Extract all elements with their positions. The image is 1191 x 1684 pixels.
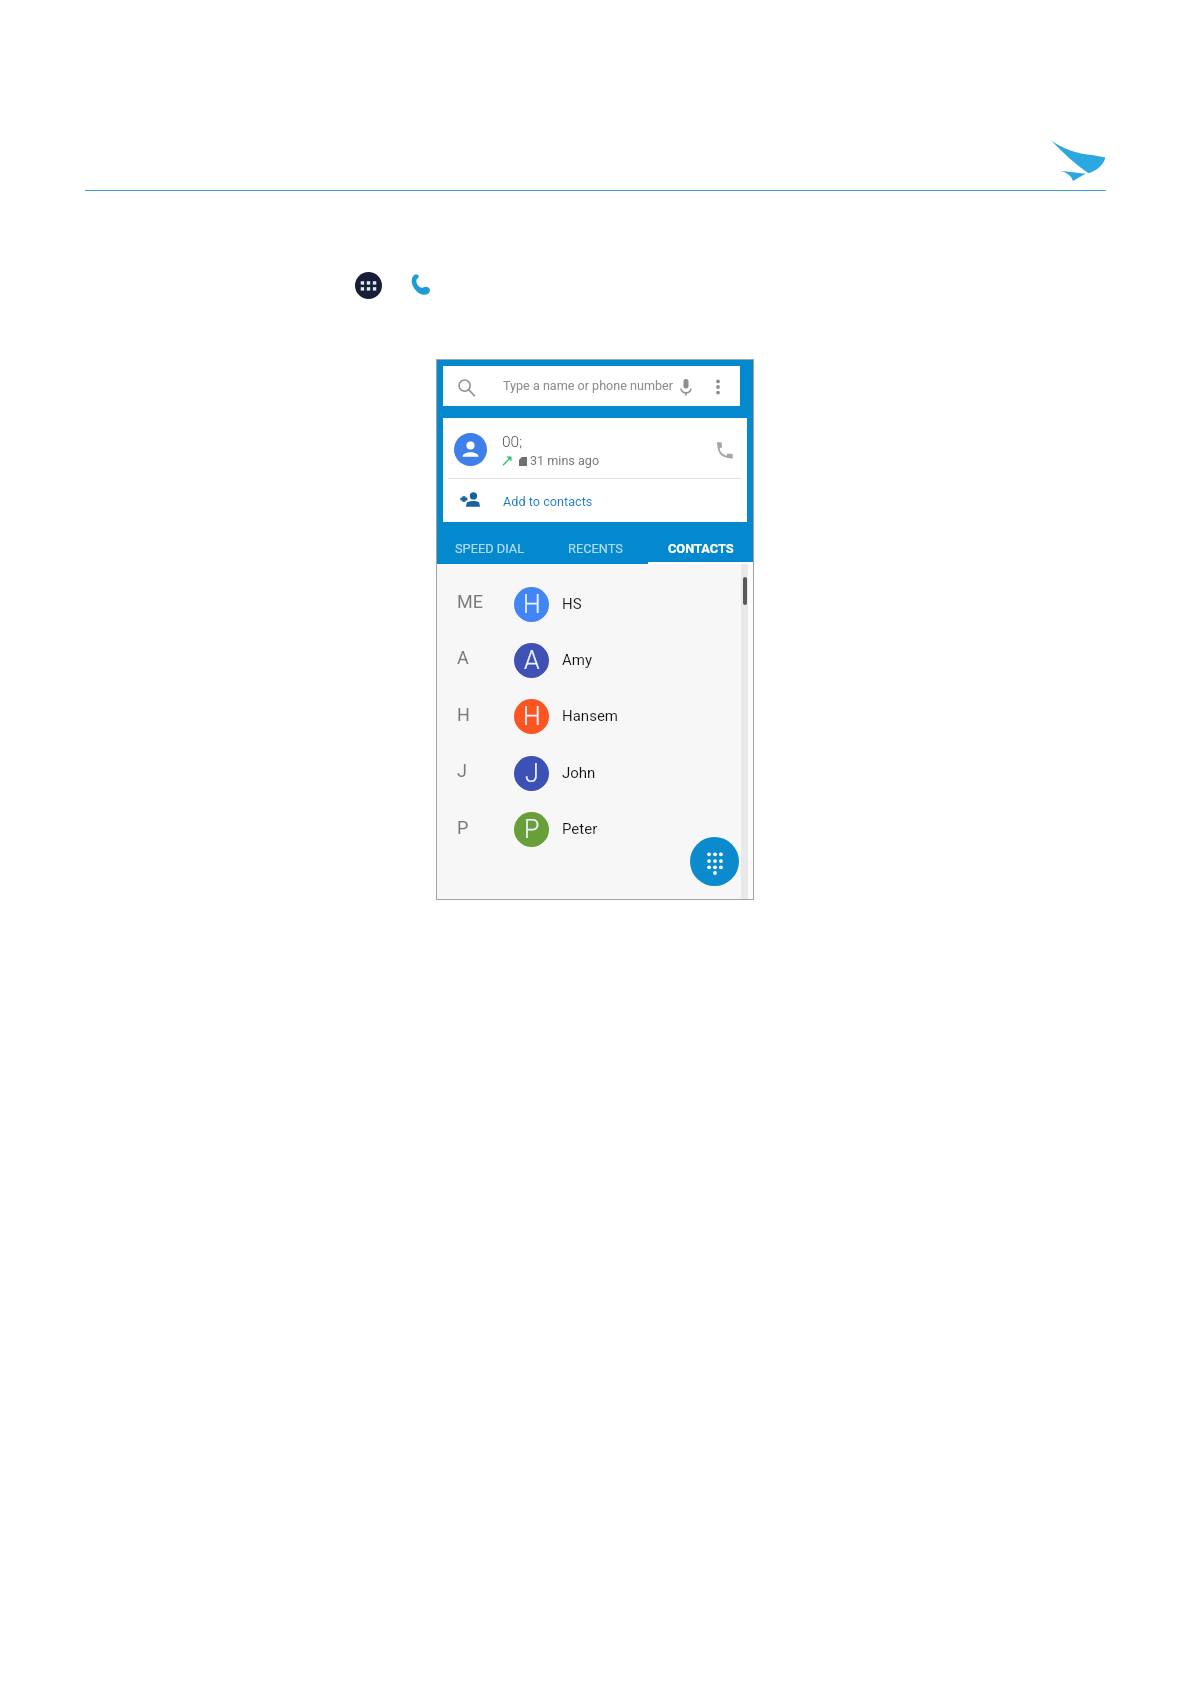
staticText: 31 mins ago: [530, 453, 600, 468]
staticText: H: [523, 702, 541, 731]
button[interactable]: P: [457, 817, 469, 838]
staticText: Peter: [562, 820, 598, 838]
button[interactable]: J: [507, 745, 747, 801]
staticText: P: [524, 815, 540, 844]
staticText: Type a name or phone number: [503, 378, 674, 393]
button[interactable]: H: [507, 688, 747, 744]
button[interactable]: Voice search: [680, 379, 692, 396]
button[interactable]: A: [457, 647, 469, 668]
button[interactable]: H: [507, 576, 747, 632]
button[interactable]: Call 00;: [443, 418, 747, 478]
button[interactable]: Phone: [409, 274, 430, 295]
button[interactable]: H: [457, 704, 470, 725]
staticText: Add to contacts: [503, 494, 593, 509]
staticText: J: [525, 759, 539, 788]
button[interactable]: ME: [457, 591, 483, 612]
staticText: RECENTS: [568, 541, 623, 556]
staticText: A: [524, 646, 540, 675]
button[interactable]: [443, 479, 747, 522]
button[interactable]: Dialpad: [690, 837, 739, 886]
button[interactable]: Apps: [355, 272, 382, 299]
button[interactable]: J: [457, 760, 467, 781]
button[interactable]: SPEED DIAL: [437, 522, 543, 564]
button[interactable]: P: [507, 801, 747, 857]
staticText: Amy: [562, 651, 593, 669]
staticText: 00;: [502, 433, 523, 451]
button[interactable]: CONTACTS: [648, 522, 753, 564]
staticText: CONTACTS: [668, 541, 734, 556]
staticText: HS: [562, 595, 582, 613]
staticText: H: [523, 590, 541, 619]
staticText: Hansem: [562, 707, 618, 725]
staticText: SPEED DIAL: [455, 541, 525, 556]
button[interactable]: A: [507, 632, 747, 688]
button[interactable]: More options: [711, 378, 725, 396]
staticText: John: [562, 764, 596, 782]
button[interactable]: Search contacts: [443, 366, 740, 406]
button[interactable]: RECENTS: [543, 522, 648, 564]
button[interactable]: Call: [716, 442, 733, 459]
